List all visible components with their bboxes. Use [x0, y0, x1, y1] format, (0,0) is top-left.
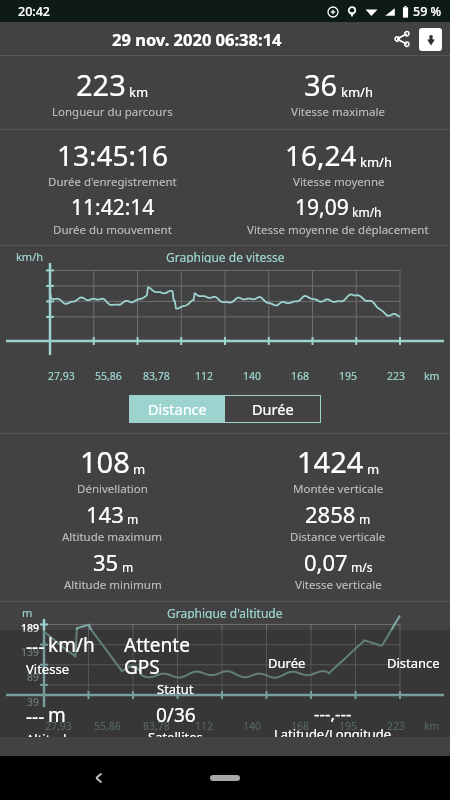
button[interactable]: Distance	[129, 395, 225, 423]
staticText: Graphique d'altitude	[167, 605, 283, 619]
staticText: 36	[304, 65, 338, 104]
staticText: Montée verticale	[293, 481, 384, 497]
staticText: Vitesse maximale	[291, 104, 385, 120]
staticText: m	[367, 460, 380, 478]
staticText: Durée	[268, 654, 306, 672]
staticText: ---	[26, 634, 45, 660]
staticText: Dénivellation	[77, 481, 148, 497]
staticText: 112	[195, 719, 214, 733]
staticText: Latitude/Longitude	[274, 725, 392, 737]
staticText: 2858	[305, 499, 356, 529]
staticText: m	[359, 511, 371, 527]
staticText: Satellites	[148, 728, 203, 737]
button[interactable]: Retour	[82, 761, 116, 795]
staticText: km/h	[341, 83, 373, 101]
staticText: m	[48, 702, 66, 728]
staticText: 112	[195, 369, 214, 383]
staticText: Altitude minimum	[64, 577, 162, 593]
staticText: 0,07	[304, 547, 348, 577]
staticText: 16,24	[285, 136, 357, 174]
staticText: Altitude maximum	[62, 529, 163, 545]
staticText: m	[127, 511, 139, 527]
staticText: 168	[291, 369, 310, 383]
staticText: 59 %	[413, 3, 442, 20]
staticText: Durée du mouvement	[53, 222, 172, 238]
staticText: 0/36	[156, 702, 196, 728]
staticText: 83,78	[143, 719, 170, 733]
staticText: m	[133, 460, 146, 478]
staticText: 89	[27, 670, 40, 684]
staticText: 55,86	[94, 719, 121, 733]
staticText: 19,09	[295, 193, 349, 222]
staticText: Longueur du parcours	[52, 104, 173, 120]
staticText: m	[22, 605, 33, 619]
staticText: m/s	[351, 559, 373, 575]
staticText: 140	[243, 719, 262, 733]
staticText: 35	[93, 547, 119, 577]
staticText: km	[424, 369, 440, 383]
staticText: km/h	[48, 632, 95, 658]
staticText: 55,86	[95, 369, 122, 383]
staticText: 11:42:14	[71, 193, 155, 222]
staticText: Distance	[148, 399, 207, 419]
staticText: km	[129, 83, 149, 101]
staticText: 140	[243, 369, 262, 383]
button[interactable]: Partager	[387, 24, 417, 54]
staticText: Vitesse moyenne de déplacement	[247, 222, 429, 238]
staticText: 195	[339, 719, 358, 733]
staticText: Vitesse moyenne	[293, 174, 385, 190]
staticText: ---	[26, 704, 45, 730]
staticText: Statut	[157, 680, 194, 698]
button[interactable]: Durée	[225, 395, 321, 423]
staticText: m	[122, 559, 134, 575]
staticText: Vitesse verticale	[295, 577, 382, 593]
staticText: 223	[387, 719, 406, 733]
staticText: Altitude	[26, 730, 74, 737]
staticText: km/h	[16, 249, 44, 263]
staticText: 27,93	[48, 369, 75, 383]
staticText: 27,93	[45, 719, 72, 733]
button[interactable]: Télécharger	[419, 28, 442, 51]
staticText: Distance	[387, 654, 440, 672]
staticText: 29 nov. 2020 06:38:14	[112, 28, 282, 50]
staticText: 195	[339, 369, 358, 383]
staticText: Durée	[252, 399, 294, 419]
staticText: Distance verticale	[290, 529, 386, 545]
staticText: 143	[86, 499, 124, 529]
staticText: km/h	[360, 153, 392, 171]
staticText: km	[424, 719, 440, 733]
staticText: 189	[21, 621, 40, 635]
staticText: 13:45:16	[57, 136, 169, 174]
staticText: 168	[291, 719, 310, 733]
staticText: Graphique de vitesse	[166, 249, 285, 263]
staticText: km/h	[352, 204, 382, 220]
staticText: 108	[80, 442, 130, 481]
staticText: 223	[76, 65, 126, 104]
staticText: 39	[27, 695, 40, 709]
staticText: Durée d'enregistrement	[48, 174, 177, 190]
staticText: Vitesse	[26, 660, 69, 678]
staticText: 223	[387, 369, 406, 383]
staticText: 1424	[297, 442, 364, 481]
staticText: Attente GPS	[124, 632, 226, 680]
staticText: ---,---	[314, 702, 352, 725]
staticText: 83,78	[143, 369, 170, 383]
staticText: 139	[21, 645, 40, 659]
staticText: 20:42	[18, 3, 51, 20]
button[interactable]: Accueil	[210, 775, 240, 781]
